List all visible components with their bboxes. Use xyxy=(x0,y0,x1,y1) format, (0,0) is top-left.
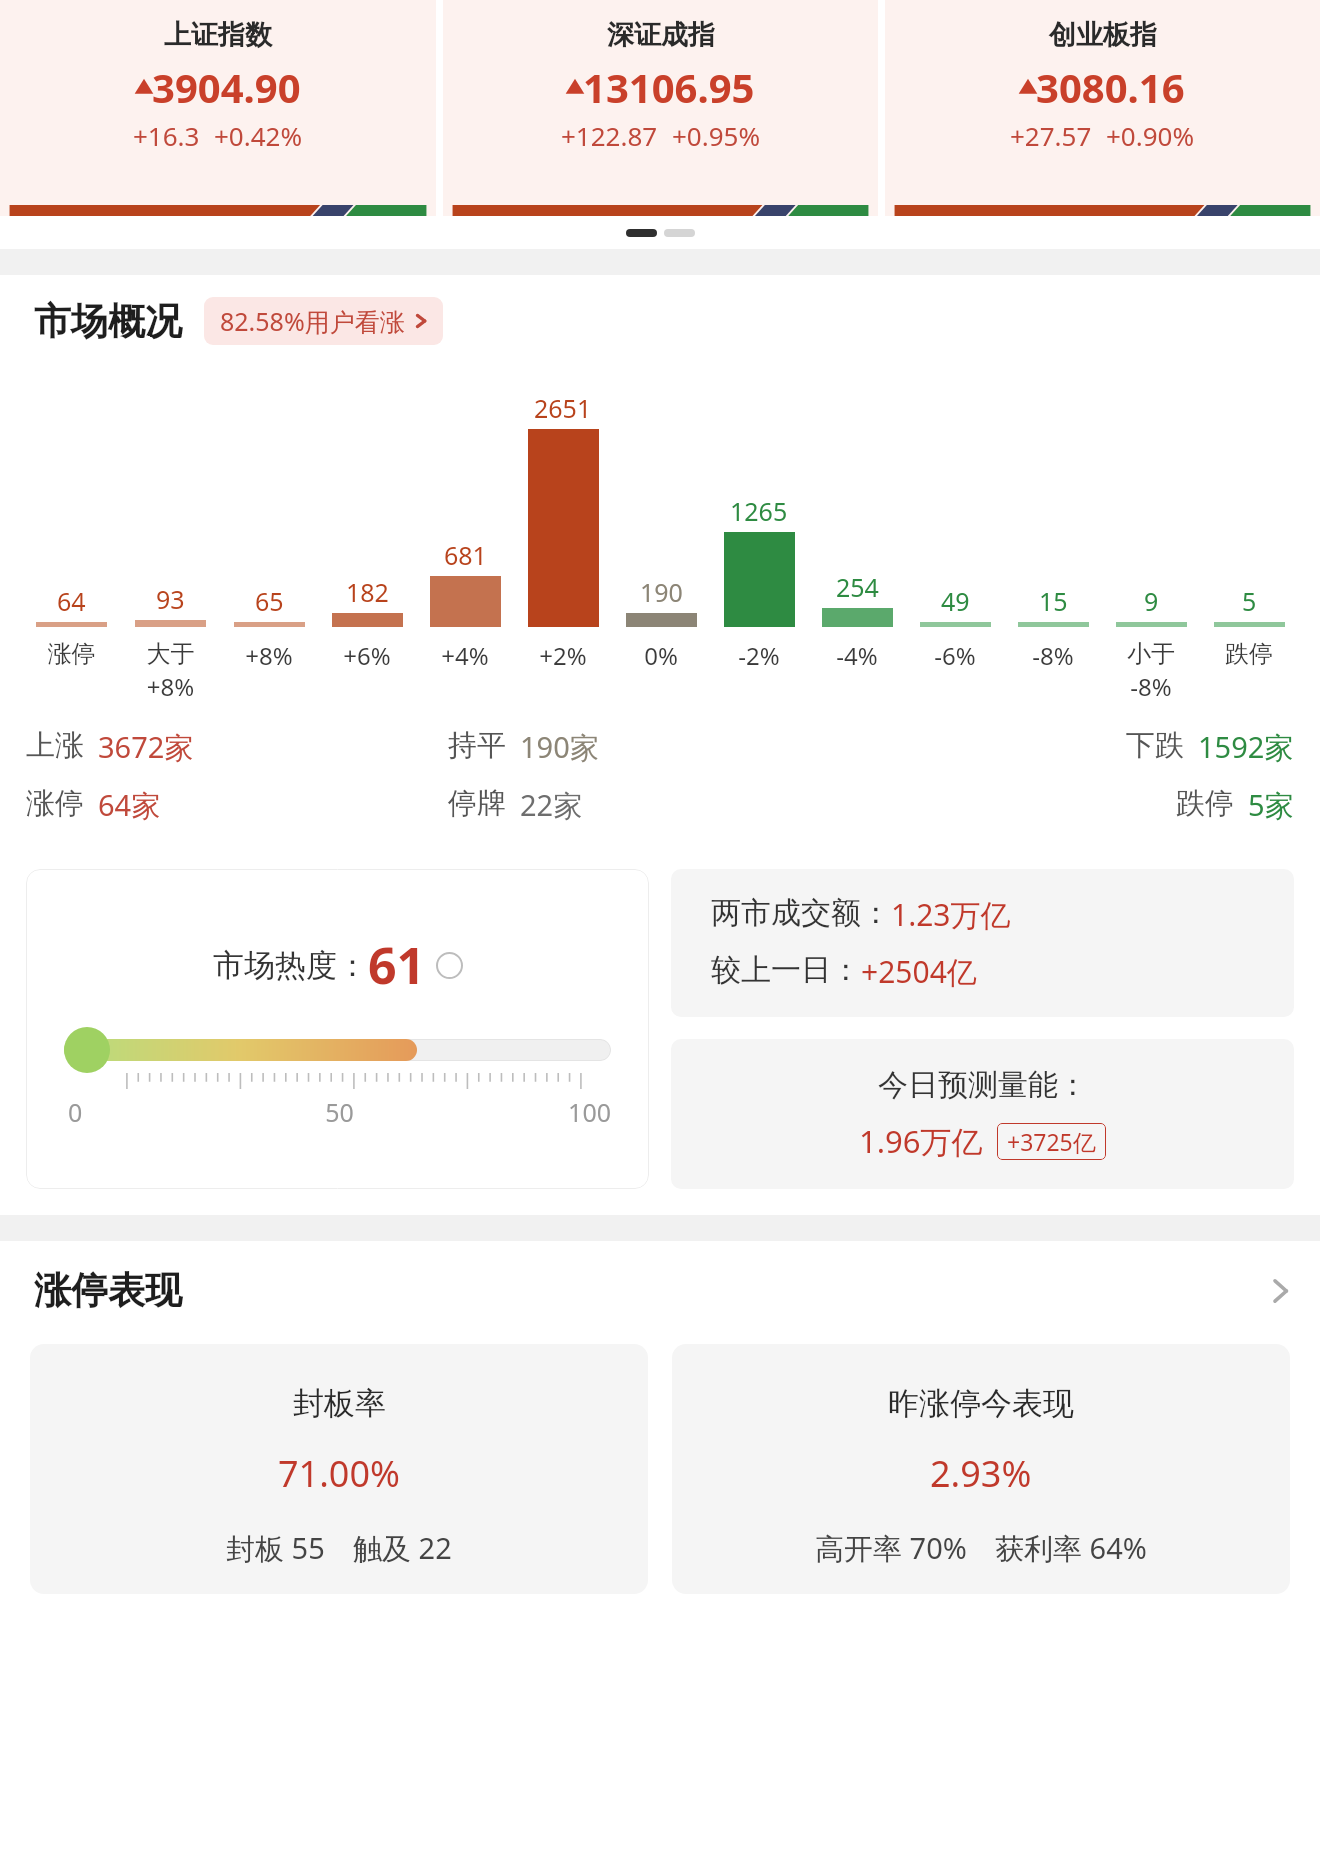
button[interactable]: 82.58%用户看涨 xyxy=(204,297,443,345)
staticText: +6% xyxy=(318,639,416,672)
staticText: +0.42% xyxy=(214,118,303,153)
staticText: 涨停 xyxy=(26,785,84,822)
staticText: -2% xyxy=(710,639,808,672)
staticText: 71.00% xyxy=(278,1449,400,1498)
staticText: 61 xyxy=(368,931,426,999)
staticText: 9 xyxy=(1144,584,1159,618)
staticText: 5 xyxy=(1242,584,1257,618)
staticText: 3080.16 xyxy=(1036,60,1185,114)
other: 查看更多涨停表现 xyxy=(1270,1274,1290,1308)
button[interactable]: 封板率 xyxy=(30,1344,648,1594)
staticText: 190 xyxy=(640,575,683,609)
staticText: 182 xyxy=(346,575,389,609)
button[interactable]: 热度滑块 xyxy=(64,1027,110,1073)
staticText: 市场热度： xyxy=(213,946,368,985)
staticText: +4% xyxy=(416,639,514,672)
staticText: 大于 +8% xyxy=(121,639,220,703)
staticText: 较上一日： xyxy=(711,951,861,989)
staticText: 2651 xyxy=(534,391,592,425)
staticText: 190家 xyxy=(520,727,599,767)
staticText: 254 xyxy=(836,570,879,604)
staticText: 82.58%用户看涨 xyxy=(220,304,405,338)
staticText: 3904.90 xyxy=(152,60,301,114)
button[interactable]: 深证成指 xyxy=(443,0,878,216)
staticText: 高开率 70% xyxy=(815,1528,967,1568)
staticText: -4% xyxy=(808,639,906,672)
staticText: 1.96万亿 xyxy=(859,1120,983,1162)
staticText: 1.23万亿 xyxy=(891,894,1011,935)
staticText: 上涨 xyxy=(26,727,84,764)
button[interactable]: 上证指数 xyxy=(0,0,436,216)
staticText: -8% xyxy=(1004,639,1102,672)
staticText: +27.57 xyxy=(1010,118,1092,153)
staticText: 93 xyxy=(156,582,185,616)
button[interactable]: 市场热度说明 xyxy=(436,952,463,979)
staticText: +0.95% xyxy=(672,118,761,153)
button[interactable]: 市场热度： xyxy=(26,869,649,1189)
staticText: 停牌 xyxy=(448,785,506,822)
staticText: 今日预测量能： xyxy=(878,1066,1088,1104)
staticText: 15 xyxy=(1039,584,1068,618)
staticText: 昨涨停今表现 xyxy=(888,1384,1074,1423)
staticText: 封板率 xyxy=(293,1384,386,1423)
staticText: 0% xyxy=(612,639,710,672)
staticText: 100 xyxy=(430,1095,611,1129)
staticText: +2% xyxy=(514,639,612,672)
staticText: 两市成交额： xyxy=(711,894,891,932)
staticText: +2504亿 xyxy=(861,951,977,992)
staticText: 0 xyxy=(68,1095,249,1129)
staticText: 681 xyxy=(444,538,487,572)
staticText: +8% xyxy=(220,639,318,672)
button[interactable]: 两市成交额： xyxy=(671,869,1294,1017)
staticText: 深证成指 xyxy=(607,18,715,52)
staticText: 13106.95 xyxy=(583,60,755,114)
staticText: +0.90% xyxy=(1106,118,1195,153)
button[interactable]: 昨涨停今表现 xyxy=(672,1344,1290,1594)
button[interactable]: 创业板指 xyxy=(885,0,1320,216)
staticText: +3725亿 xyxy=(1007,1126,1096,1157)
staticText: +16.3 xyxy=(133,118,200,153)
staticText: 涨停 xyxy=(22,639,121,669)
staticText: 上证指数 xyxy=(164,18,272,52)
staticText: +122.87 xyxy=(561,118,658,153)
staticText: 1265 xyxy=(730,494,788,528)
staticText: 2.93% xyxy=(930,1449,1032,1498)
staticText: 3672家 xyxy=(98,727,194,767)
staticText: 跌停 xyxy=(1200,639,1298,669)
staticText: 下跌 xyxy=(1126,727,1184,764)
staticText: 创业板指 xyxy=(1049,18,1157,52)
staticText: 持平 xyxy=(448,727,506,764)
staticText: 1592家 xyxy=(1198,727,1294,767)
staticText: 小于 -8% xyxy=(1102,639,1200,703)
staticText: 50 xyxy=(249,1095,430,1129)
staticText: 49 xyxy=(941,584,970,618)
button[interactable]: 今日预测量能： xyxy=(671,1039,1294,1189)
staticText: 跌停 xyxy=(1176,785,1234,822)
staticText: 64 xyxy=(57,584,86,618)
staticText: 触及 22 xyxy=(353,1528,452,1568)
staticText: 获利率 64% xyxy=(995,1528,1147,1568)
staticText: -6% xyxy=(906,639,1004,672)
staticText: 涨停表现 xyxy=(34,1267,182,1314)
staticText: 65 xyxy=(255,584,284,618)
staticText: 5家 xyxy=(1248,785,1294,825)
staticText: 封板 55 xyxy=(226,1528,325,1568)
button[interactable]: 涨停表现 xyxy=(0,1267,1320,1314)
staticText: 市场概况 xyxy=(34,298,182,345)
staticText: 64家 xyxy=(98,785,161,825)
staticText: 22家 xyxy=(520,785,583,825)
